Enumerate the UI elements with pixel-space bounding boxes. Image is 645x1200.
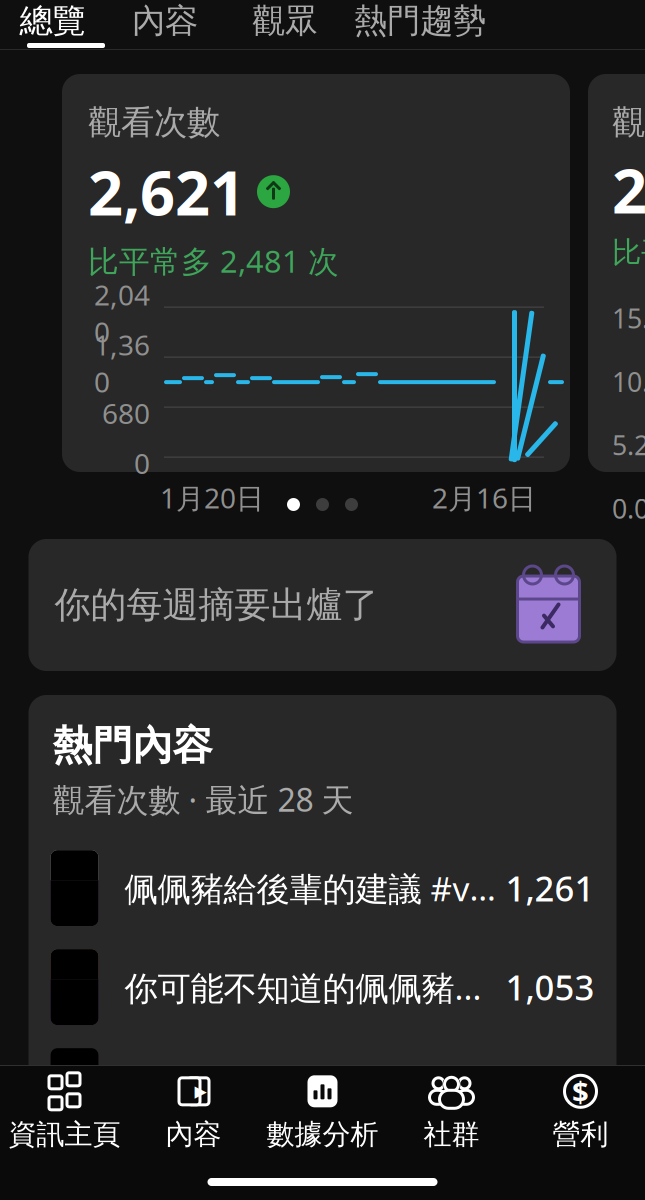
- staticText: 1,360: [94, 326, 150, 400]
- staticText: $: [572, 1072, 589, 1111]
- staticText: 你可能不知道的佩佩豬伯爵 #vt...: [124, 965, 497, 1009]
- staticText: 觀看次數: [88, 102, 220, 143]
- staticText: 數據分析: [266, 1117, 378, 1152]
- staticText: 0.0: [612, 491, 645, 526]
- staticText: 總覽: [19, 0, 85, 41]
- staticText: 內容: [165, 1117, 221, 1152]
- button[interactable]: $: [516, 1066, 645, 1158]
- staticText: 10.5: [612, 364, 645, 399]
- staticText: 2,040: [94, 276, 150, 350]
- staticText: 比平: [612, 234, 645, 270]
- button[interactable]: 佩佩豬給後輩的建議 #vtuber #...: [28, 839, 616, 938]
- staticText: ▶: [194, 1082, 206, 1100]
- button[interactable]: 資訊主頁: [0, 1066, 129, 1158]
- staticText: 1,053: [505, 964, 594, 1010]
- button[interactable]: 內容: [105, 0, 225, 42]
- staticText: 你的每週摘要出爐了: [54, 583, 378, 627]
- staticText: 觀看次數 · 最近 28 天: [52, 778, 353, 821]
- staticText: 5.2: [612, 427, 645, 463]
- staticText: 熱門趨勢: [354, 0, 486, 41]
- staticText: 佩佩豬給後輩的建議 #vtuber #...: [124, 866, 497, 910]
- staticText: 熱門內容: [52, 721, 212, 770]
- button[interactable]: 熱門趨勢: [345, 0, 495, 42]
- staticText: 社群: [423, 1117, 479, 1152]
- button[interactable]: 社群: [387, 1066, 516, 1158]
- button[interactable]: 總覽: [0, 0, 105, 42]
- staticText: 一天一次叫很收斂？ #vtuber #...: [124, 1064, 546, 1108]
- staticText: 680: [102, 394, 150, 432]
- staticText: 資訊主頁: [8, 1117, 120, 1152]
- staticText: 1月20日: [160, 479, 264, 516]
- button[interactable]: 一天一次叫很收斂？ #vtuber #...: [28, 1037, 616, 1136]
- staticText: 比平常多 2,481 次: [88, 240, 339, 281]
- staticText: 2月16日: [432, 479, 536, 516]
- staticText: 2,621: [88, 151, 245, 232]
- staticText: 觀看: [612, 102, 645, 143]
- staticText: 15.8: [612, 300, 645, 336]
- staticText: 0: [134, 444, 150, 482]
- staticText: 內容: [132, 0, 198, 41]
- button[interactable]: 你可能不知道的佩佩豬伯爵 #vt...: [28, 938, 616, 1037]
- button[interactable]: 數據分析: [258, 1066, 387, 1158]
- staticText: 26: [612, 149, 645, 230]
- staticText: 觀眾: [252, 0, 318, 41]
- staticText: 1,261: [505, 865, 594, 911]
- button[interactable]: 觀看次數: [62, 74, 570, 472]
- staticText: 68: [554, 1063, 594, 1109]
- button[interactable]: ▶: [129, 1066, 258, 1158]
- button[interactable]: 你的每週摘要出爐了: [28, 539, 616, 671]
- button[interactable]: 觀眾: [225, 0, 345, 42]
- staticText: 營利: [552, 1117, 608, 1152]
